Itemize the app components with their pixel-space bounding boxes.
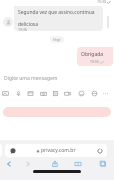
button[interactable]: Tool 5: [52, 90, 59, 97]
button[interactable]: Avatar: [3, 17, 13, 27]
button[interactable]: Tool 4: [40, 90, 47, 97]
button[interactable]: Tool 2: [15, 90, 22, 97]
button[interactable]: Tool 1: [2, 90, 9, 97]
staticText: Digite uma mensagem: [4, 75, 58, 82]
button[interactable]: Reload: [97, 148, 103, 154]
button[interactable]: Tool 3: [27, 90, 34, 97]
staticText: privacy.com.br: [41, 147, 76, 154]
staticText: 19:36: [18, 27, 27, 31]
button[interactable]: Tool 6: [64, 90, 71, 97]
button[interactable]: [3, 107, 111, 117]
button[interactable]: Obrigada: [77, 47, 113, 66]
button[interactable]: privacy.com.br: [5, 144, 107, 157]
button[interactable]: Back: [4, 159, 14, 169]
staticText: Segunda vez que assino,continua delicios…: [18, 9, 95, 27]
staticText: Hoje: [53, 37, 61, 42]
button[interactable]: Tabs: [98, 159, 108, 169]
button[interactable]: More: [102, 90, 109, 97]
staticText: 19:30: [97, 0, 106, 4]
button[interactable]: Segunda vez que assino,continua delicios…: [14, 6, 103, 31]
staticText: 19:56: [90, 59, 99, 64]
button[interactable]: Forward: [23, 159, 33, 169]
button[interactable]: Tool 8: [91, 90, 98, 97]
staticText: Obrigada: [81, 51, 104, 58]
button[interactable]: Share: [50, 159, 60, 169]
button[interactable]: Bookmarks: [73, 159, 83, 169]
button[interactable]: Tool 7: [78, 90, 85, 97]
